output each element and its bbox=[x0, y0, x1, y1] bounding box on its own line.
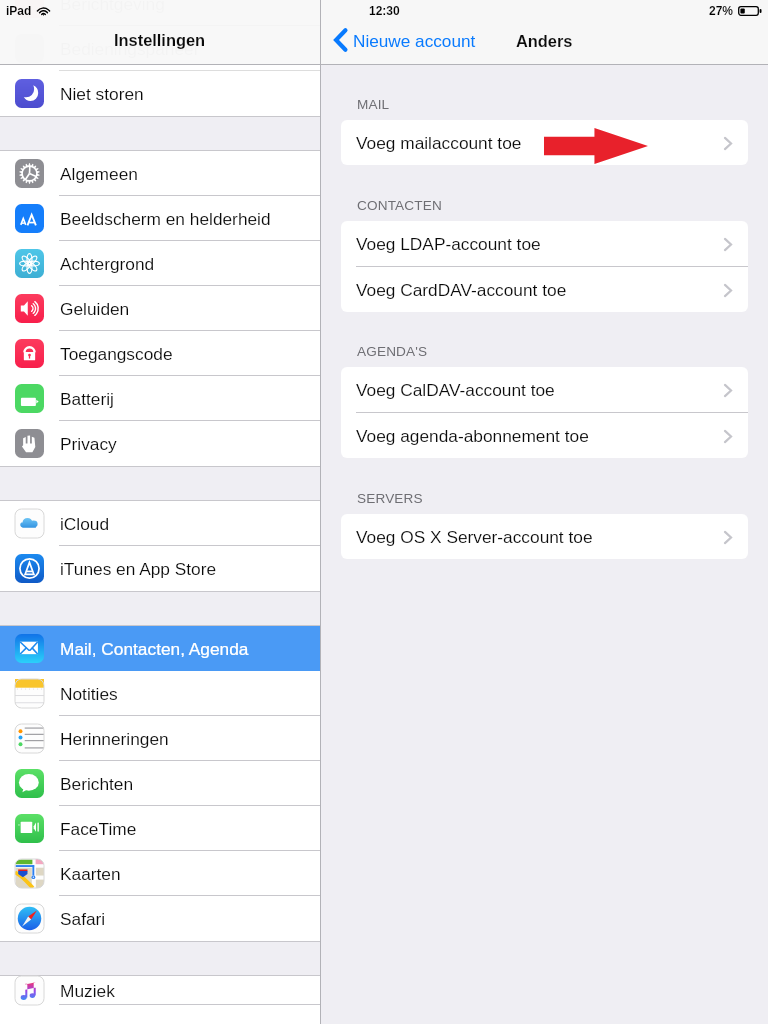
staticText: Batterij bbox=[60, 389, 114, 408]
button[interactable]: Bedieningspaneel bbox=[0, 26, 320, 71]
button[interactable]: Privacy bbox=[0, 421, 320, 466]
button[interactable]: Notities bbox=[0, 671, 320, 716]
staticText: Voeg CardDAV-account toe bbox=[356, 280, 567, 299]
staticText: Achtergrond bbox=[60, 254, 155, 273]
staticText: CONTACTEN bbox=[357, 198, 442, 213]
staticText: Algemeen bbox=[60, 164, 138, 183]
staticText: iTunes en App Store bbox=[60, 559, 217, 578]
staticText: MAIL bbox=[357, 97, 390, 112]
staticText: Voeg mailaccount toe bbox=[356, 133, 522, 152]
button[interactable]: Batterij bbox=[0, 376, 320, 421]
button[interactable]: FaceTime bbox=[0, 806, 320, 851]
button[interactable]: Algemeen bbox=[0, 151, 320, 196]
staticText: Anders bbox=[516, 32, 573, 50]
button[interactable]: Niet storen bbox=[0, 71, 320, 116]
button[interactable]: Herinneringen bbox=[0, 716, 320, 761]
button[interactable]: iTunes en App Store bbox=[0, 546, 320, 591]
staticText: Voeg OS X Server-account toe bbox=[356, 527, 593, 546]
staticText: Berichten bbox=[60, 774, 134, 793]
button[interactable]: Beeldscherm en helderheid bbox=[0, 196, 320, 241]
staticText: AGENDA'S bbox=[357, 344, 428, 359]
staticText: 12:30 bbox=[369, 4, 400, 17]
staticText: Safari bbox=[60, 909, 106, 928]
button[interactable]: Toegangscode bbox=[0, 331, 320, 376]
staticText: 27% bbox=[709, 4, 734, 17]
staticText: Herinneringen bbox=[60, 729, 169, 748]
button[interactable]: Voeg agenda-abonnement toe bbox=[341, 413, 748, 458]
button[interactable]: Voeg OS X Server-account toe bbox=[341, 514, 748, 559]
staticText: iPad bbox=[6, 4, 32, 17]
button[interactable]: Voeg CardDAV-account toe bbox=[341, 267, 748, 312]
staticText: Beeldscherm en helderheid bbox=[60, 209, 271, 228]
staticText: Muziek bbox=[60, 981, 115, 1000]
button[interactable]: Berichten bbox=[0, 761, 320, 806]
staticText: Geluiden bbox=[60, 299, 130, 318]
staticText: Instellingen bbox=[114, 31, 206, 49]
button[interactable]: Geluiden bbox=[0, 286, 320, 331]
staticText: Mail, Contacten, Agenda bbox=[60, 639, 249, 658]
staticText: iCloud bbox=[60, 514, 110, 533]
button[interactable]: Voeg CalDAV-account toe bbox=[341, 367, 748, 412]
staticText: Bedieningspaneel bbox=[60, 39, 198, 58]
button[interactable]: Voeg mailaccount toe bbox=[341, 120, 748, 165]
button[interactable]: iCloud bbox=[0, 501, 320, 546]
staticText: Niet storen bbox=[60, 84, 144, 103]
staticText: FaceTime bbox=[60, 819, 137, 838]
staticText: Voeg LDAP-account toe bbox=[356, 234, 541, 253]
button[interactable]: Kaarten bbox=[0, 851, 320, 896]
other: Back bbox=[334, 29, 347, 51]
staticText: Privacy bbox=[60, 434, 117, 453]
staticText: Toegangscode bbox=[60, 344, 173, 363]
button[interactable]: Muziek bbox=[0, 976, 320, 1005]
staticText: Nieuwe account bbox=[353, 31, 476, 50]
staticText: Voeg agenda-abonnement toe bbox=[356, 426, 589, 445]
button[interactable]: Achtergrond bbox=[0, 241, 320, 286]
staticText: Notities bbox=[60, 684, 118, 703]
staticText: SERVERS bbox=[357, 491, 423, 506]
button[interactable]: Voeg LDAP-account toe bbox=[341, 221, 748, 266]
staticText: Kaarten bbox=[60, 864, 121, 883]
button[interactable]: Back bbox=[334, 29, 476, 51]
button[interactable]: Mail, Contacten, Agenda bbox=[0, 626, 320, 671]
staticText: Voeg CalDAV-account toe bbox=[356, 380, 555, 399]
button[interactable]: Safari bbox=[0, 896, 320, 941]
button[interactable]: Berichtgeving bbox=[0, 0, 320, 26]
